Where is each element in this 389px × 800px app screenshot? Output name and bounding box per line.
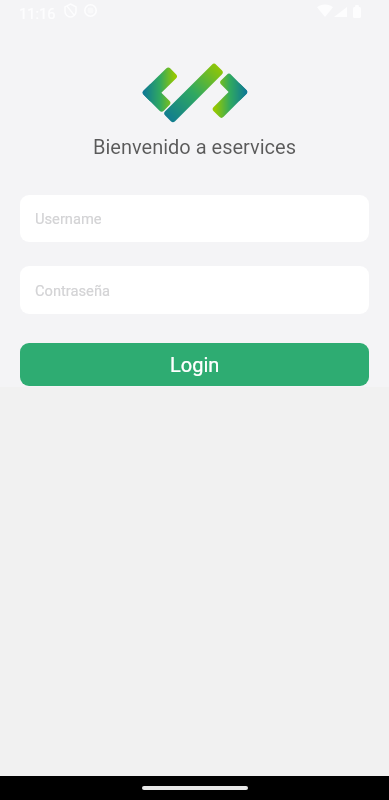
staticText: Login: [170, 353, 220, 376]
staticText: 11:16: [19, 5, 56, 22]
button[interactable]: Username: [20, 195, 369, 242]
other: VPN: [65, 4, 76, 17]
staticText: Bienvenido a eservices: [0, 135, 389, 158]
other: Home: [142, 786, 248, 790]
staticText: Username: [35, 210, 102, 227]
staticText: Contraseña: [35, 282, 111, 299]
button[interactable]: Login: [20, 343, 369, 386]
other: Notification: [84, 4, 97, 17]
button[interactable]: Contraseña: [20, 266, 369, 314]
